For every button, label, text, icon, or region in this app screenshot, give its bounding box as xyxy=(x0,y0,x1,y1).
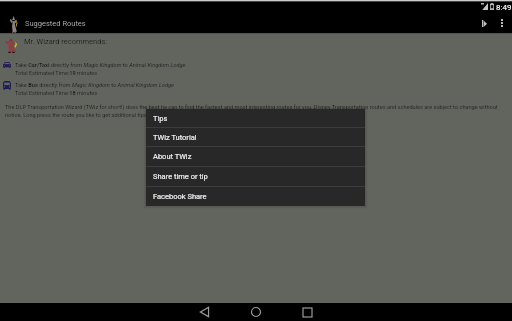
staticText: Tips xyxy=(153,114,168,123)
staticText: Facebook Share xyxy=(153,192,207,201)
button[interactable]: Tips xyxy=(146,109,365,127)
staticText: Mr. Wizard recommends: xyxy=(24,37,108,46)
button[interactable]: Take Car/Taxi directly from Magic Kingdo… xyxy=(0,62,512,80)
button[interactable]: Share time or tip xyxy=(146,167,365,186)
button[interactable]: Back xyxy=(178,303,230,321)
button[interactable]: Take Bus directly from Magic Kingdom to … xyxy=(0,82,512,100)
staticText: Suggested Routes xyxy=(25,19,86,28)
staticText: The DLP Transportation Wizard (TWiz for … xyxy=(5,104,508,118)
button[interactable]: TWiz Tutorial xyxy=(146,128,365,146)
staticText: About TWiz xyxy=(153,152,192,161)
button[interactable]: More options xyxy=(492,13,512,33)
staticText: 8:49 xyxy=(496,3,512,12)
staticText: Take Car/Taxi directly from Magic Kingdo… xyxy=(15,62,186,76)
staticText: Take Bus directly from Magic Kingdom to … xyxy=(15,82,174,96)
button[interactable]: Home xyxy=(230,303,282,321)
button[interactable]: Recents xyxy=(281,303,333,321)
staticText: Share time or tip xyxy=(153,172,208,181)
button[interactable]: Share xyxy=(474,13,494,33)
staticText: TWiz Tutorial xyxy=(153,133,197,142)
button[interactable]: About TWiz xyxy=(146,147,365,166)
button[interactable]: Facebook Share xyxy=(146,187,365,206)
